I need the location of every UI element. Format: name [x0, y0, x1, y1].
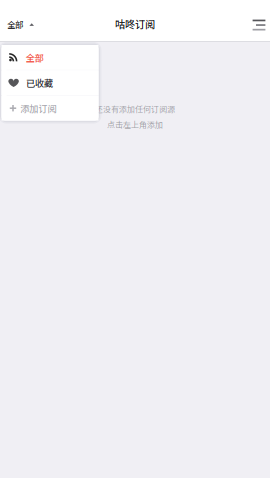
staticText: 咕咚订阅	[115, 16, 155, 31]
button[interactable]: 添加订阅	[1, 96, 98, 121]
button[interactable]: 全部	[0, 0, 60, 42]
staticText: 添加订阅	[20, 101, 56, 115]
staticText: 全部	[26, 51, 44, 64]
button[interactable]: 已收藏	[1, 70, 98, 95]
staticText: 全部	[7, 18, 23, 30]
button[interactable]: 全部	[1, 45, 98, 70]
staticText: 已收藏	[26, 76, 53, 89]
staticText: 还没有添加任何订阅源	[95, 103, 175, 115]
button[interactable]: Menu	[236, 0, 270, 42]
staticText: 点击左上角添加	[107, 119, 163, 130]
